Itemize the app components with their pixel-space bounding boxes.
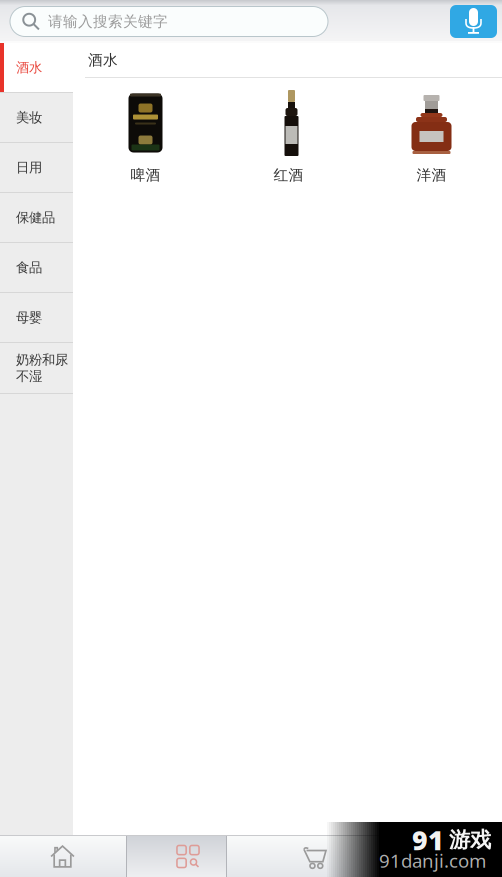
staticText: 洋酒 <box>416 166 446 184</box>
staticText: 美妆 <box>16 109 42 126</box>
button[interactable]: 酒水 <box>0 43 73 92</box>
button[interactable]: 保健品 <box>0 193 73 242</box>
staticText: 啤酒 <box>130 166 160 184</box>
staticText: 酒水 <box>88 51 118 69</box>
staticText: 母婴 <box>16 309 42 326</box>
button[interactable]: 食品 <box>0 243 73 292</box>
staticText: 91 <box>412 822 444 858</box>
button[interactable]: 语音搜索 <box>450 5 497 38</box>
staticText: 91danji.com <box>379 848 486 873</box>
staticText: 保健品 <box>16 209 55 226</box>
button[interactable]: 洋酒 <box>360 90 502 184</box>
button[interactable]: 请输入搜索关键字 <box>10 6 328 36</box>
staticText: 酒水 <box>16 59 42 76</box>
button[interactable]: 购物车 <box>251 836 376 877</box>
button[interactable]: 红酒 <box>217 90 360 184</box>
button[interactable]: 啤酒 <box>74 90 217 184</box>
button[interactable]: 日用 <box>0 143 73 192</box>
button[interactable]: 我的 <box>376 836 502 877</box>
button[interactable]: 奶粉和尿不湿 <box>0 343 73 393</box>
staticText: 食品 <box>16 259 42 276</box>
staticText: 日用 <box>16 159 42 176</box>
button[interactable]: 分类 <box>125 836 251 877</box>
staticText: 请输入搜索关键字 <box>48 12 168 30</box>
staticText: 红酒 <box>273 166 303 184</box>
button[interactable]: 首页 <box>0 836 125 877</box>
button[interactable]: 母婴 <box>0 293 73 342</box>
staticText: 游戏 <box>449 827 491 853</box>
staticText: 奶粉和尿不湿 <box>16 352 68 384</box>
button[interactable]: 美妆 <box>0 93 73 142</box>
